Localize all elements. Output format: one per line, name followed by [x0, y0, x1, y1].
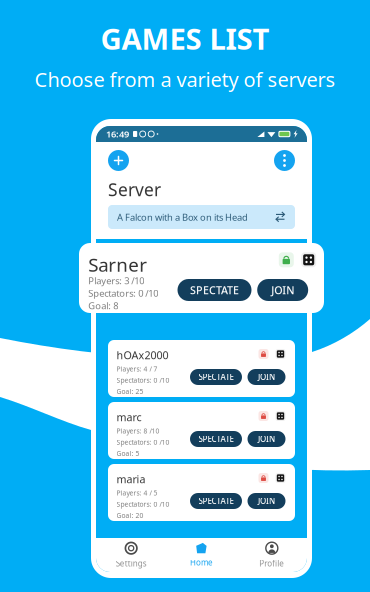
staticText: JOIN [258, 372, 275, 382]
staticText: Spectators: 0 /10 [88, 287, 158, 299]
staticText: Players: 8 /10 [116, 426, 159, 435]
staticText: Profile [259, 558, 284, 569]
staticText: JOIN [258, 434, 275, 444]
staticText: Players: 4 / 7 [116, 364, 157, 373]
button[interactable]: JOIN [247, 493, 285, 509]
staticText: Server [108, 178, 161, 201]
staticText: Settings [116, 558, 147, 569]
button[interactable]: Profile [237, 538, 307, 572]
staticText: JOIN [258, 496, 275, 506]
button[interactable]: JOIN [257, 279, 308, 301]
staticText: JOIN [271, 283, 294, 297]
staticText: GAMES LIST [100, 19, 269, 58]
staticText: Goal: 5 [116, 449, 139, 458]
button[interactable]: SPECTATE [190, 431, 242, 447]
button[interactable]: Home [166, 538, 237, 572]
button[interactable]: More options [274, 150, 295, 171]
button[interactable]: SPECTATE [177, 279, 251, 301]
staticText: SPECTATE [190, 283, 239, 297]
button[interactable]: A Falcon with a Box on its Head [108, 205, 295, 229]
staticText: maria [116, 472, 145, 486]
staticText: hOAx2000 [116, 348, 168, 362]
button[interactable]: JOIN [247, 369, 285, 385]
staticText: Players: 4 / 5 [116, 488, 157, 497]
staticText: Spectators: 0 /10 [116, 438, 169, 447]
staticText: SPECTATE [198, 496, 233, 506]
button[interactable]: SPECTATE [190, 493, 242, 509]
staticText: Goal: 8 [88, 299, 118, 312]
staticText: SPECTATE [198, 372, 233, 382]
staticText: Home [190, 557, 213, 568]
button[interactable]: JOIN [247, 431, 285, 447]
button[interactable]: Add server [108, 150, 129, 171]
staticText: Spectators: 0 /10 [116, 500, 169, 509]
staticText: marc [116, 410, 141, 424]
button[interactable]: SPECTATE [190, 369, 242, 385]
button[interactable]: Settings [96, 538, 166, 572]
staticText: Goal: 20 [116, 511, 143, 520]
staticText: Goal: 25 [116, 387, 143, 396]
staticText: SPECTATE [198, 434, 233, 444]
staticText: Players: 3 /10 [88, 274, 144, 287]
staticText: 16:49 [106, 128, 129, 140]
staticText: Choose from a variety of servers [34, 66, 335, 93]
staticText: Sarner [88, 252, 147, 277]
staticText: A Falcon with a Box on its Head [117, 211, 248, 223]
staticText: Spectators: 0 /10 [116, 376, 169, 385]
